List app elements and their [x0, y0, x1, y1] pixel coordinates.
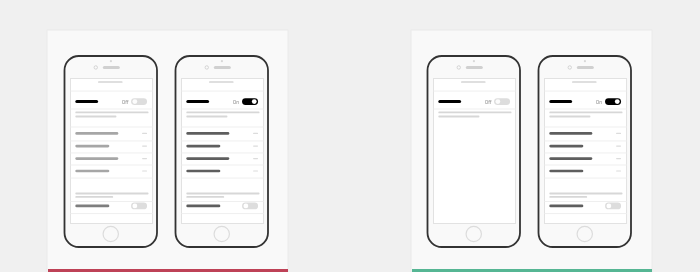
button[interactable]: Current screenshot [411, 30, 652, 272]
button[interactable]: Baseline screenshot [47, 30, 288, 272]
